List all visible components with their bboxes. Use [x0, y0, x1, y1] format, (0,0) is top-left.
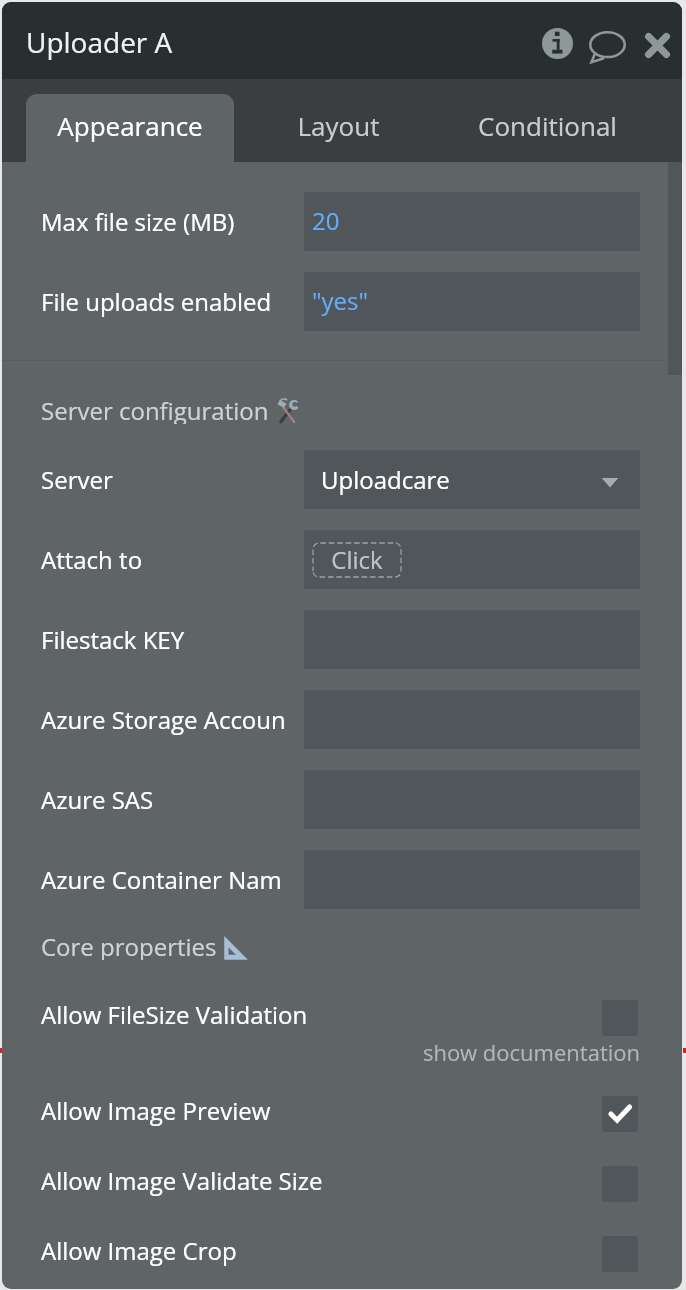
button[interactable]: Conditional	[443, 94, 652, 162]
staticText: Azure Storage Accoun	[41, 703, 286, 736]
staticText: Server configuration	[41, 394, 269, 424]
staticText: Allow Image Preview	[41, 1094, 271, 1127]
button[interactable]: Click	[313, 543, 401, 577]
staticText: show documentation	[340, 1037, 640, 1067]
staticText: Allow Image Crop	[41, 1234, 237, 1267]
button[interactable]: Allow Image Validate Size	[2, 1166, 682, 1202]
button[interactable]: "yes"	[304, 272, 640, 331]
staticText: Azure SAS	[41, 783, 154, 816]
staticText: Server	[41, 463, 113, 496]
button[interactable]: Allow Image Crop	[2, 1236, 682, 1272]
staticText: Max file size (MB)	[41, 205, 235, 238]
button[interactable]: Uploadcare	[304, 450, 640, 509]
staticText: Uploadcare	[321, 463, 450, 496]
staticText: Attach to	[41, 543, 143, 576]
staticText: File uploads enabled	[41, 285, 272, 318]
button[interactable]: Layout	[234, 94, 443, 162]
button[interactable]: Close	[637, 21, 682, 65]
staticText: 20	[312, 204, 340, 237]
button[interactable]: Allow Image Preview	[2, 1096, 682, 1132]
staticText: Filestack KEY	[41, 623, 185, 656]
staticText: Azure Container Nam	[41, 863, 282, 896]
button[interactable]: Allow FileSize Validation	[2, 1000, 682, 1036]
staticText: Allow FileSize Validation	[41, 998, 308, 1031]
button[interactable]: Comments	[581, 21, 629, 65]
staticText: Uploader A	[26, 23, 173, 61]
staticText: Core properties	[41, 930, 217, 960]
button[interactable]: Appearance	[26, 94, 234, 162]
button[interactable]: show documentation	[340, 1035, 640, 1065]
staticText: Allow Image Validate Size	[41, 1164, 323, 1197]
staticText: Conditional	[443, 108, 652, 143]
staticText: Appearance	[26, 108, 234, 143]
staticText: Layout	[234, 108, 443, 143]
button[interactable]: Information	[534, 21, 582, 65]
staticText: "yes"	[312, 284, 369, 317]
button[interactable]: 20	[304, 192, 640, 251]
staticText: Click	[313, 543, 401, 576]
